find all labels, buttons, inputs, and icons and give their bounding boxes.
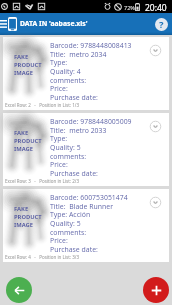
staticText: PRODUCT [14,61,42,69]
staticText: FAKE [14,205,29,213]
button[interactable]: FAKE [3,37,169,110]
staticText: Barcode: 9788448008413 [50,41,132,50]
button[interactable]: FAKE [3,113,169,186]
staticText: Title: metro 2034 [50,50,107,59]
staticText: DATA IN 'aabase.xls' [20,19,88,28]
button[interactable]: Back [6,277,32,303]
staticText: comments: [50,228,87,237]
staticText: Title: Blade Runner [50,202,114,211]
staticText: Purchase date: [50,93,98,102]
staticText: Price: [50,236,68,245]
button[interactable]: Expand [149,196,162,209]
staticText: Price: [50,84,68,93]
staticText: Type: Acción [50,210,91,219]
staticText: IMAGE [14,145,34,153]
staticText: Excel Row: 2 - Position in List: 1/3 [5,102,80,108]
staticText: Barcode: 9788448005009 [50,117,132,126]
staticText: Price: [50,160,68,169]
staticText: IMAGE [14,69,34,77]
button[interactable]: Help [155,18,168,31]
staticText: Type: [50,58,69,67]
button[interactable]: Menu [0,13,7,35]
staticText: Barcode: 600753051474 [50,193,128,202]
button[interactable]: Expand [149,120,162,133]
button[interactable]: FAKE [3,189,169,262]
button[interactable]: Expand [149,44,162,57]
staticText: Purchase date: [50,245,98,254]
staticText: 72% [124,4,135,11]
staticText: comments: [50,152,87,161]
staticText: PRODUCT [14,213,42,221]
staticText: Excel Row: 3 - Position in List: 2/3 [5,178,80,184]
staticText: PRODUCT [14,137,42,145]
staticText: comments: [50,76,87,85]
staticText: ? [159,18,164,31]
staticText: Type: [50,134,69,143]
staticText: FAKE [14,53,29,61]
staticText: Excel Row: 4 - Position in List: 3/3 [5,254,80,260]
button[interactable]: Add [143,277,169,303]
staticText: Quality: 5 [50,143,81,152]
staticText: Quality: 5 [50,219,81,228]
staticText: Quality: 4 [50,67,81,76]
staticText: Purchase date: [50,169,98,178]
staticText: IMAGE [14,221,34,229]
staticText: 20:40 [145,2,167,14]
staticText: FAKE [14,129,29,137]
staticText: Title: metro 2033 [50,126,107,135]
